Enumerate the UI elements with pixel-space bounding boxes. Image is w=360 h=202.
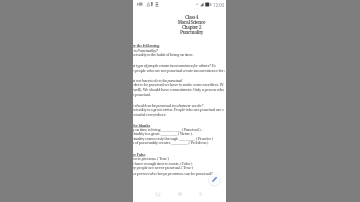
staticText: g on time is being _____________ ( Punct… <box>133 127 225 132</box>
staticText: n punctual. <box>133 92 225 97</box>
staticText: Class 4 <box>145 14 226 20</box>
staticText: nctuality is a great virtue. People who … <box>133 107 225 112</box>
staticText: zy people are never punctual. ( True ) <box>133 165 225 170</box>
staticText: Chapter 2 <box>145 24 226 30</box>
staticText: me is precious. ( True ) <box>133 156 225 161</box>
button[interactable]: Back <box>153 189 163 199</box>
staticText: rder to be punctual we have to make some… <box>133 82 225 87</box>
staticText: at type of people create inconvenience f… <box>133 63 225 68</box>
staticText: (well). We should have commitment, Only … <box>133 87 225 92</box>
staticText: ccessful everywhere. <box>133 112 225 117</box>
staticText: s a person who keeps promises, can be pu… <box>133 171 225 176</box>
staticText: ctuality comes only through ___________ … <box>133 136 225 141</box>
staticText: the blanks <box>133 123 225 128</box>
staticText: Punctuality <box>145 29 226 35</box>
staticText: or False <box>133 152 225 157</box>
staticText: t is Punctuality? <box>133 48 225 53</box>
staticText: e people who are not punctual create inc… <box>133 68 225 73</box>
staticText: at we have to do to be punctual <box>133 78 225 83</box>
staticText: er the following <box>133 43 225 48</box>
button[interactable]: Home <box>175 189 185 199</box>
staticText: nctuality is the habit of being on time. <box>133 52 225 57</box>
button[interactable]: Recent apps <box>195 189 205 199</box>
staticText: ctuality is a great ___________ ( Virtue… <box>133 131 225 136</box>
button[interactable]: Edit <box>208 173 221 186</box>
staticText: Moral Science <box>145 19 226 25</box>
staticText: k of punctuality creates ___________ ( P… <box>133 140 225 145</box>
staticText: e have enough time to waste. ( False ) <box>133 161 225 166</box>
staticText: 12:00 <box>213 2 224 8</box>
staticText: y should we be punctual in whatever we d… <box>133 103 225 108</box>
